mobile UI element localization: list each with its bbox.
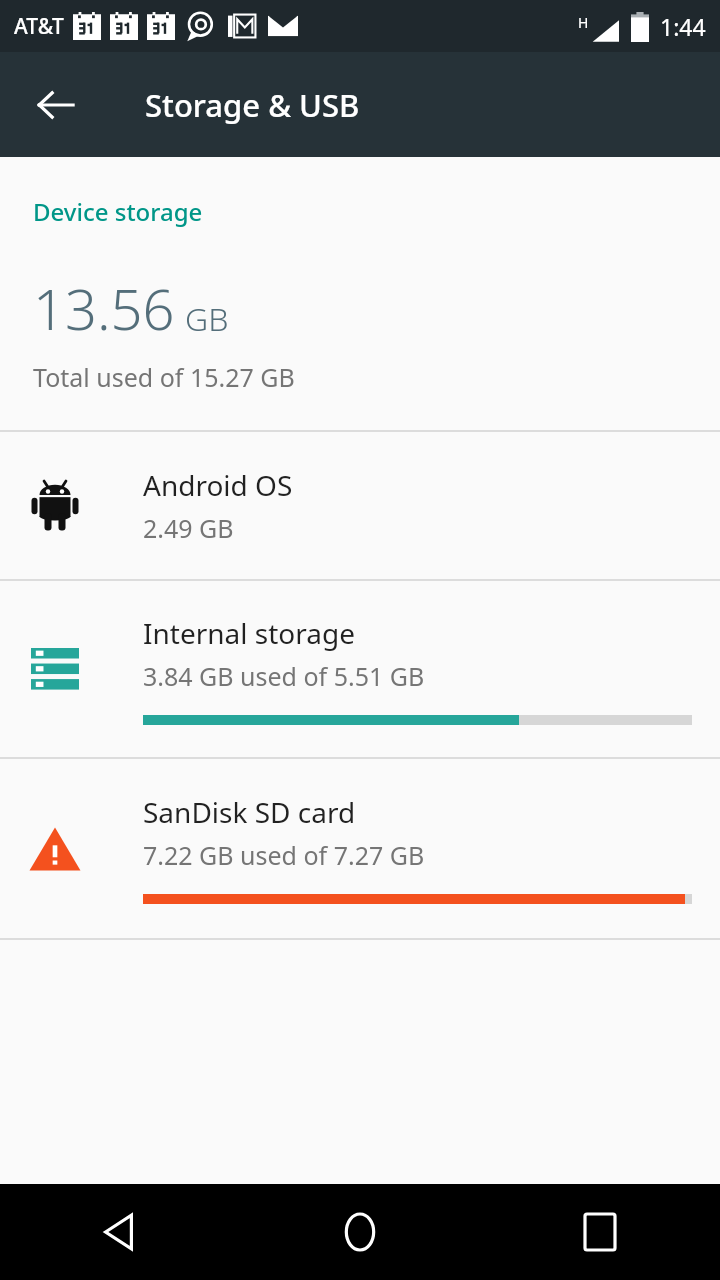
staticText: 1:44 bbox=[660, 11, 706, 42]
staticText: 2.49 GB bbox=[143, 511, 234, 545]
staticText: Android OS bbox=[143, 466, 293, 504]
button[interactable]: Recent apps bbox=[480, 1184, 720, 1280]
staticText: 3.84 GB used of 5.51 GB bbox=[143, 659, 425, 693]
staticText: Internal storage bbox=[143, 614, 355, 652]
button[interactable]: Android OS bbox=[0, 432, 720, 579]
staticText: H bbox=[578, 13, 589, 32]
staticText: SanDisk SD card bbox=[143, 793, 356, 831]
staticText: AT&T bbox=[14, 12, 64, 41]
button[interactable]: Back bbox=[0, 1184, 240, 1280]
staticText: 13.56 bbox=[33, 270, 175, 346]
staticText: Device storage bbox=[33, 195, 203, 228]
button[interactable]: Back bbox=[20, 69, 92, 141]
staticText: GB bbox=[185, 297, 229, 341]
button[interactable]: SanDisk SD card bbox=[0, 759, 720, 938]
staticText: 7.22 GB used of 7.27 GB bbox=[143, 838, 425, 872]
button[interactable]: Device storage bbox=[0, 157, 720, 430]
button[interactable]: Internal storage bbox=[0, 581, 720, 757]
staticText: Total used of 15.27 GB bbox=[33, 360, 295, 394]
button[interactable]: Home bbox=[240, 1184, 480, 1280]
staticText: Storage & USB bbox=[145, 84, 360, 126]
